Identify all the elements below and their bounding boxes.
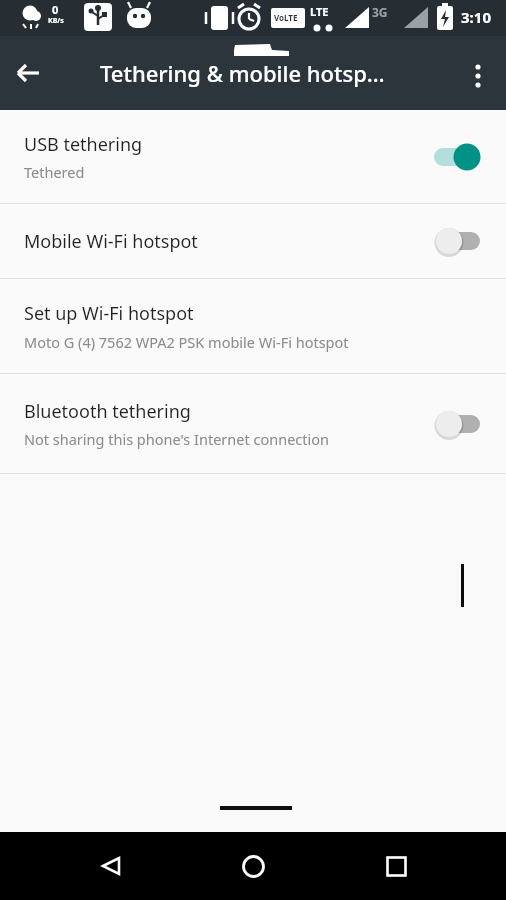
staticText: VoLTE — [274, 12, 298, 23]
button[interactable]: Bluetooth tethering — [0, 374, 506, 473]
button[interactable]: Off — [430, 409, 484, 439]
staticText: Tethered — [24, 162, 85, 182]
staticText: Not sharing this phone's Internet connec… — [24, 429, 329, 449]
button[interactable]: Recents — [364, 834, 428, 898]
button[interactable]: Mobile Wi-Fi hotspot — [0, 204, 506, 278]
staticText: Moto G (4) 7562 WPA2 PSK mobile Wi-Fi ho… — [24, 332, 349, 352]
staticText: USB tethering — [24, 132, 143, 157]
button[interactable]: Off — [430, 226, 484, 256]
button[interactable]: On — [430, 142, 484, 172]
staticText: 3:10 — [461, 7, 491, 27]
button[interactable]: Set up Wi-Fi hotspot — [0, 279, 506, 373]
staticText: KB/s — [48, 16, 64, 26]
staticText: Set up Wi-Fi hotspot — [24, 301, 194, 326]
button[interactable]: USB tethering — [0, 110, 506, 203]
button[interactable]: Back — [79, 834, 143, 898]
staticText: LTE — [310, 4, 329, 19]
button[interactable]: More options — [450, 45, 506, 101]
button[interactable]: Home — [221, 834, 285, 898]
staticText: Mobile Wi-Fi hotspot — [24, 229, 198, 254]
button[interactable]: Back — [0, 45, 56, 101]
staticText: 3G — [372, 4, 388, 20]
staticText: Bluetooth tethering — [24, 399, 191, 424]
staticText: 0 — [52, 2, 59, 17]
staticText: Tethering & mobile hotsp… — [100, 58, 450, 88]
